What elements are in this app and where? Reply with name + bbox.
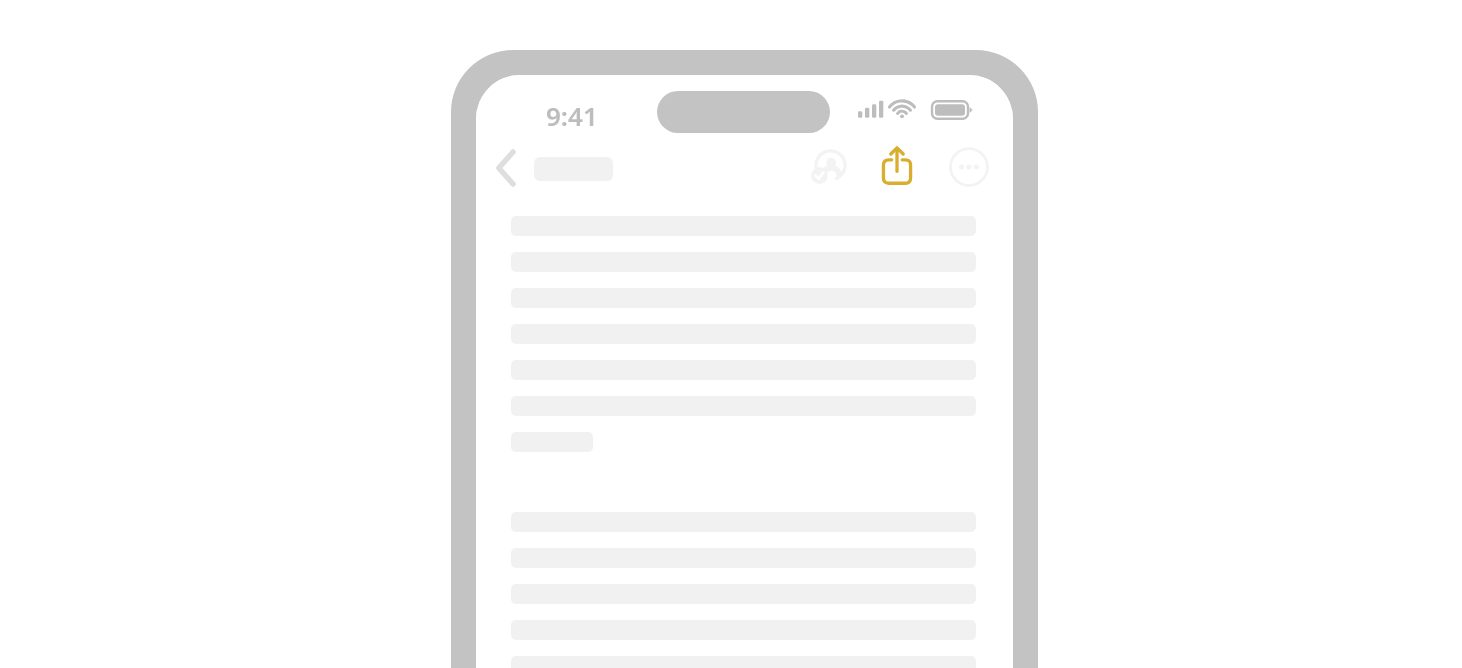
button[interactable]: Share bbox=[874, 143, 920, 189]
button[interactable]: Back bbox=[485, 146, 529, 190]
button[interactable]: More options bbox=[948, 146, 990, 188]
staticText: 9:41 bbox=[546, 98, 598, 133]
button[interactable]: Collaborate bbox=[807, 146, 849, 188]
